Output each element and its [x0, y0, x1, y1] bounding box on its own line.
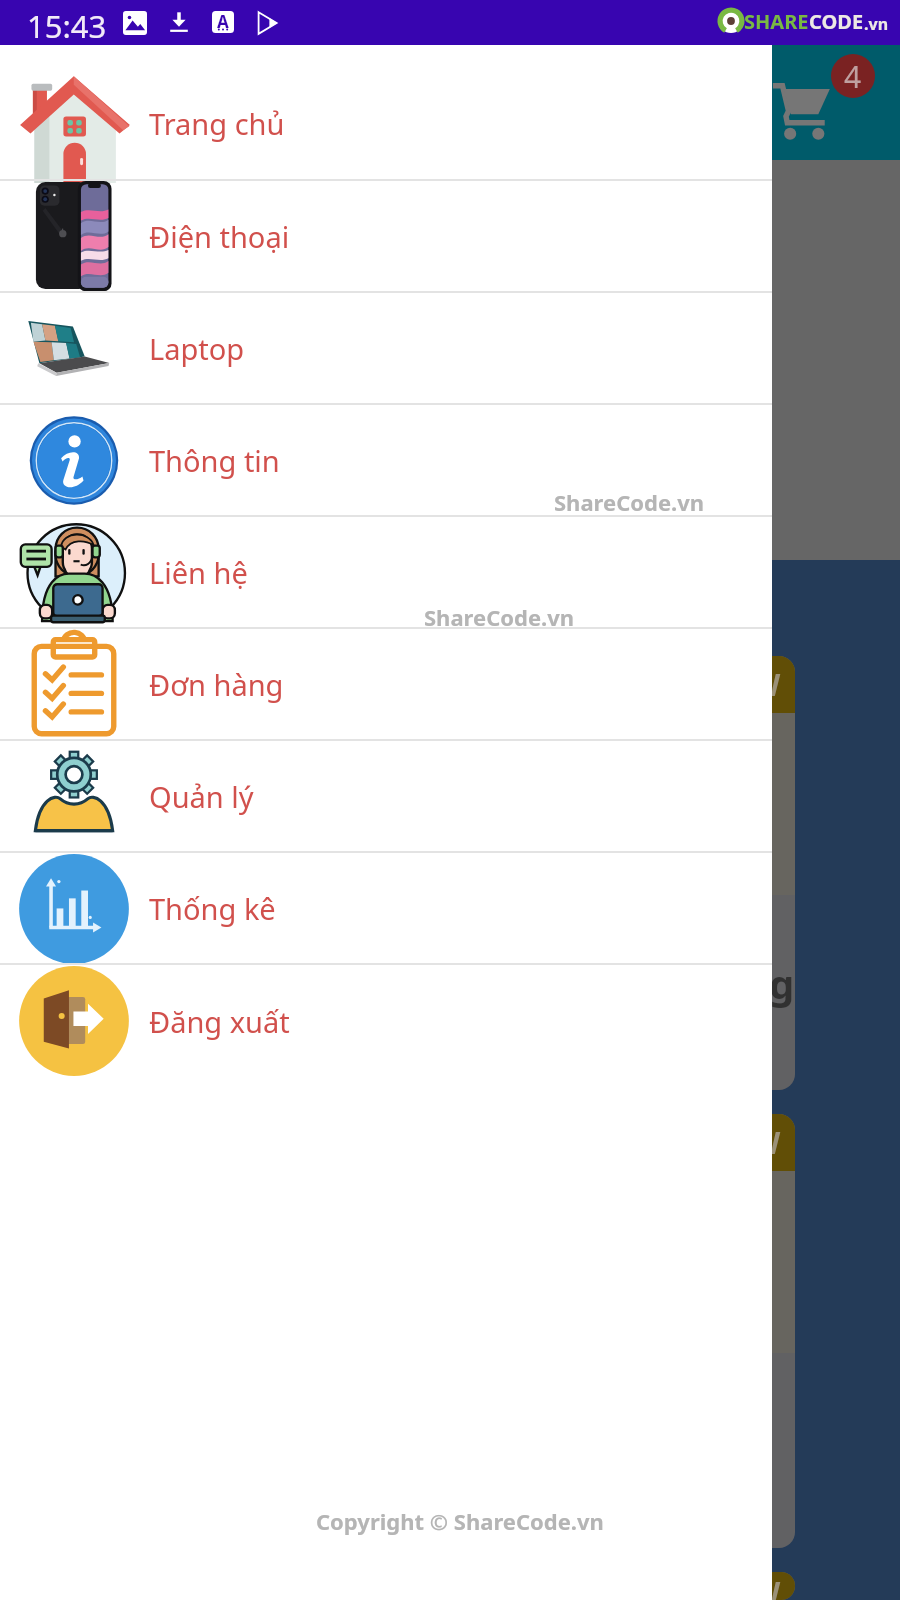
- button[interactable]: NEW: [18, 1114, 795, 1548]
- staticText: SHARE: [744, 8, 809, 35]
- staticText: Laptop Dell XPS 15 9500 Core i7 16GB 512…: [40, 1414, 795, 1468]
- staticText: Quản lý: [149, 777, 254, 816]
- staticText: CODE: [809, 8, 864, 35]
- button[interactable]: Thống kê: [0, 853, 772, 963]
- staticText: Copyright © ShareCode.vn: [316, 1506, 604, 1536]
- staticText: Thông tin: [149, 441, 280, 480]
- button[interactable]: Laptop: [0, 293, 772, 403]
- button[interactable]: Liên hệ: [0, 517, 772, 627]
- staticText: 2.000.000 đ: [40, 1016, 227, 1062]
- staticText: NEW: [710, 664, 781, 705]
- staticText: Trang chủ: [149, 104, 285, 143]
- button[interactable]: Đăng xuất: [0, 965, 772, 1077]
- staticText: Liên hệ: [149, 553, 248, 592]
- staticText: Đăng xuất: [149, 1002, 290, 1041]
- staticText: 15:43: [27, 5, 107, 47]
- button[interactable]: NEW: [18, 1572, 795, 1600]
- staticText: 4: [844, 56, 862, 97]
- button[interactable]: NEW: [18, 656, 795, 1090]
- button[interactable]: Giỏ hàng: [770, 79, 834, 143]
- staticText: ShareCode.vn: [424, 602, 575, 632]
- staticText: Thống kê: [149, 889, 276, 928]
- staticText: Điện thoại: [149, 217, 290, 256]
- staticText: Điện thoại iPhone 11 64GB chính hãng VN/…: [40, 956, 795, 1010]
- button[interactable]: Đơn hàng: [0, 629, 772, 739]
- staticText: ShareCode.vn: [554, 487, 705, 517]
- staticText: NEW: [710, 1122, 781, 1163]
- button[interactable]: Điện thoại: [0, 181, 772, 291]
- staticText: NEW: [710, 1572, 781, 1600]
- staticText: A: [217, 10, 229, 32]
- staticText: .vn: [864, 13, 889, 35]
- button[interactable]: Quản lý: [0, 741, 772, 851]
- staticText: Đơn hàng: [149, 665, 284, 704]
- staticText: Laptop: [149, 329, 245, 368]
- button[interactable]: Thông tin: [0, 405, 772, 515]
- button[interactable]: Trang chủ: [0, 67, 772, 179]
